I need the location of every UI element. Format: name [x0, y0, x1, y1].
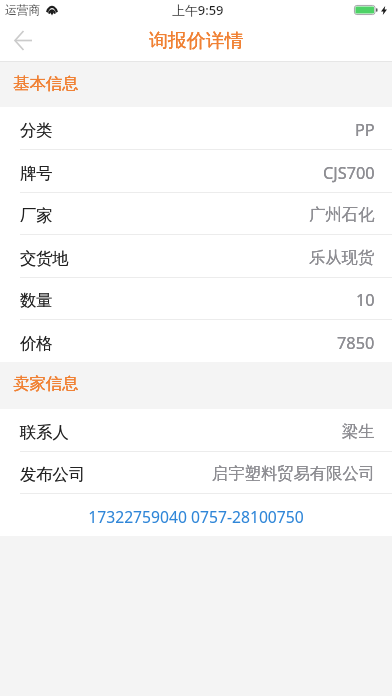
staticText: PP [355, 119, 375, 141]
staticText: 询报价详情 [149, 29, 244, 53]
staticText: 分类 [20, 120, 53, 141]
staticText: 牌号 [20, 163, 53, 184]
button[interactable]: 17322759040 0757-28100750 [0, 494, 392, 537]
staticText: 厂家 [20, 205, 53, 226]
staticText: 乐从现货 [309, 247, 375, 268]
staticText: 价格 [20, 333, 53, 354]
button[interactable]: 发布公司 [0, 451, 392, 494]
staticText: CJS700 [323, 162, 375, 184]
button[interactable]: 分类 [0, 107, 392, 150]
button[interactable]: 交货地 [0, 235, 392, 278]
button[interactable]: 牌号 [0, 150, 392, 193]
staticText: 联系人 [20, 422, 69, 443]
staticText: 7850 [337, 332, 375, 354]
staticText: 基本信息 [13, 73, 79, 94]
button[interactable]: 数量 [0, 277, 392, 320]
staticText: 广州石化 [309, 204, 375, 225]
staticText: 数量 [20, 290, 53, 311]
staticText: 10 [356, 289, 375, 311]
staticText: 价格 [20, 333, 53, 354]
staticText: 厂家 [20, 205, 53, 226]
button[interactable]: 联系人 [0, 409, 392, 452]
staticText: 上午9:59 [172, 1, 224, 19]
staticText: 分类 [20, 120, 53, 141]
staticText: 发布公司 [20, 464, 86, 485]
staticText: 询报价详情 [149, 29, 244, 53]
staticText: 运营商 [5, 3, 41, 18]
staticText: 基本信息 [13, 73, 79, 94]
staticText: 牌号 [20, 163, 53, 184]
staticText: 17322759040 0757-28100750 [88, 506, 304, 527]
staticText: 交货地 [20, 248, 69, 269]
staticText: 卖家信息 [13, 373, 79, 394]
staticText: PP [355, 119, 375, 141]
staticText: CJS700 [323, 162, 375, 184]
staticText: 启宇塑料贸易有限公司 [212, 463, 375, 484]
button[interactable]: Back [0, 21, 46, 62]
staticText: 梁生 [342, 421, 375, 442]
staticText: 乐从现货 [309, 247, 375, 268]
staticText: 数量 [20, 290, 53, 311]
staticText: 广州石化 [309, 204, 375, 225]
staticText: 10 [356, 289, 375, 311]
staticText: 交货地 [20, 248, 69, 269]
staticText: 卖家信息 [13, 373, 79, 394]
staticText: 7850 [337, 332, 375, 354]
button[interactable]: 价格 [0, 320, 392, 363]
staticText: 梁生 [342, 421, 375, 442]
button[interactable]: 厂家 [0, 192, 392, 235]
staticText: 联系人 [20, 422, 69, 443]
staticText: 发布公司 [20, 464, 86, 485]
staticText: 启宇塑料贸易有限公司 [212, 463, 375, 484]
